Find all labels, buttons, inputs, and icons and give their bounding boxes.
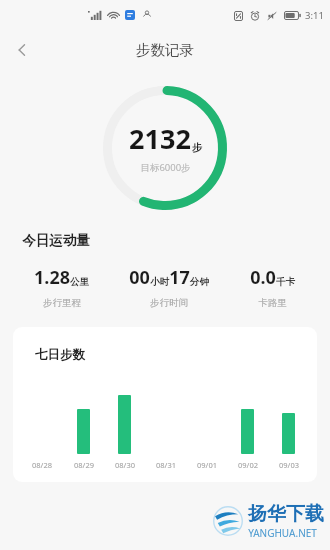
staticText: 3:11 [305,9,324,22]
staticText: 09/03 [279,460,299,470]
button[interactable]: Back [0,30,44,70]
staticText: 09/02 [238,460,258,470]
staticText: 步行时间 [150,297,188,309]
button[interactable]: 0.0 [225,265,320,309]
staticText: 08/31 [156,460,176,470]
staticText: 分钟 [190,276,209,288]
staticText: 扬华下载 [248,502,324,526]
button[interactable]: 七日步数 [13,327,317,482]
staticText: 小时 [150,276,169,288]
button[interactable]: 1.28 [10,265,113,309]
staticText: 2132 [129,120,191,157]
staticText: 0.0 [250,265,276,290]
staticText: 千卡 [276,276,295,288]
staticText: 步数记录 [136,41,194,59]
staticText: 08/30 [115,460,135,470]
staticText: 七日步数 [35,347,85,363]
staticText: 00 [129,265,150,290]
button[interactable]: 00 [113,265,225,309]
staticText: 1.28 [34,265,70,290]
staticText: YANGHUA.NET [248,526,317,540]
staticText: 08/28 [32,460,52,470]
staticText: 步 [192,141,202,154]
staticText: 步行里程 [43,297,81,309]
staticText: 目标6000步 [140,161,191,174]
staticText: 09/01 [197,460,217,470]
staticText: 公里 [70,276,89,288]
staticText: 08/29 [74,460,94,470]
staticText: 卡路里 [258,297,287,309]
staticText: 17 [169,265,190,290]
staticText: 今日运动量 [22,232,90,249]
